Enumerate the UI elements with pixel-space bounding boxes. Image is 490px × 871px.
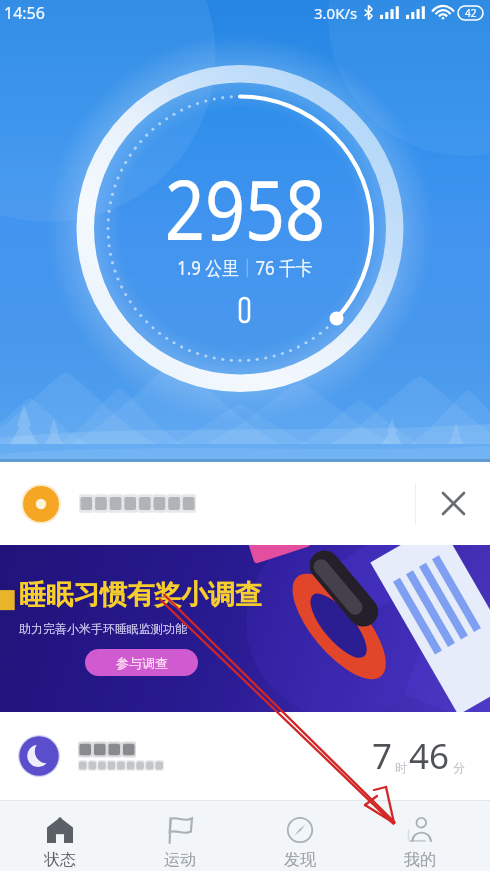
button[interactable]: 参与调查 xyxy=(85,649,198,676)
staticText: 3.0K/s xyxy=(314,3,358,23)
staticText: 分 xyxy=(453,760,465,775)
button[interactable]: 我的 xyxy=(360,801,480,871)
staticText: 1.9 公里 xyxy=(177,255,239,281)
staticText: 状态 xyxy=(44,850,76,870)
button[interactable]: 运动 xyxy=(120,801,240,871)
button[interactable]: 发现 xyxy=(240,801,360,871)
staticText: 76 千卡 xyxy=(256,255,313,281)
button[interactable]: Close xyxy=(416,462,490,545)
staticText: 42 xyxy=(465,6,477,20)
staticText: 2958 xyxy=(165,151,325,264)
button[interactable]: Close xyxy=(0,462,490,545)
button[interactable]: 睡眠习惯有奖小调查 xyxy=(0,545,490,712)
staticText: 助力完善小米手环睡眠监测功能 xyxy=(19,621,187,636)
staticText: 时 xyxy=(395,760,407,775)
staticText: 7 xyxy=(372,732,393,780)
staticText: 46 xyxy=(409,732,450,780)
staticText: 我的 xyxy=(404,850,436,870)
button[interactable]: 7 xyxy=(0,712,490,800)
staticText: 发现 xyxy=(284,850,316,870)
staticText: 参与调查 xyxy=(116,655,168,671)
staticText: 运动 xyxy=(164,850,196,870)
button[interactable]: 状态 xyxy=(0,801,120,871)
staticText: 睡眠习惯有奖小调查 xyxy=(19,578,262,612)
staticText: 14:56 xyxy=(4,2,45,24)
